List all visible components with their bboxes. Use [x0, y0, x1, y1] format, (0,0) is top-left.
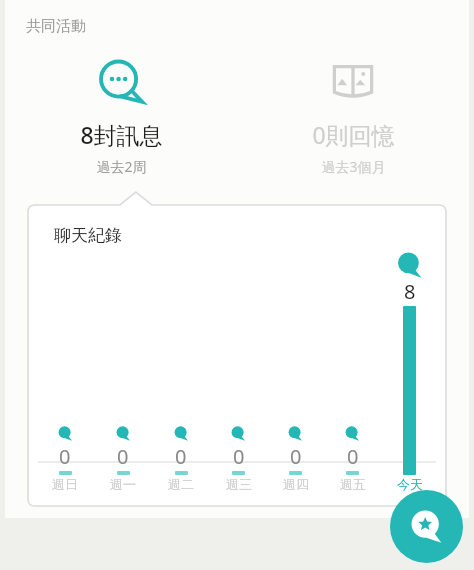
staticText: 0 [175, 443, 187, 470]
staticText: 週四 [283, 476, 309, 492]
staticText: 0 [117, 443, 129, 470]
staticText: 週五 [340, 476, 366, 492]
staticText: 週日 [52, 476, 78, 492]
staticText: 今天 [397, 476, 423, 492]
staticText: 週二 [168, 476, 194, 492]
staticText: 週一 [110, 476, 136, 492]
staticText: 0 [347, 443, 359, 470]
staticText: 週三 [226, 476, 252, 492]
staticText: 8 [404, 278, 416, 305]
staticText: 0 [290, 443, 302, 470]
staticText: 聊天紀錄 [54, 225, 122, 246]
button[interactable]: 8封訊息 [5, 52, 237, 179]
staticText: 過去3個月 [321, 157, 386, 176]
button[interactable]: New message [390, 490, 463, 563]
staticText: 0 [233, 443, 245, 470]
button[interactable]: 0則回憶 [237, 52, 469, 179]
staticText: 0則回憶 [312, 119, 395, 150]
staticText: 共同活動 [26, 17, 86, 36]
staticText: 8封訊息 [80, 119, 163, 150]
staticText: 過去2周 [96, 157, 147, 176]
staticText: 0 [59, 443, 71, 470]
